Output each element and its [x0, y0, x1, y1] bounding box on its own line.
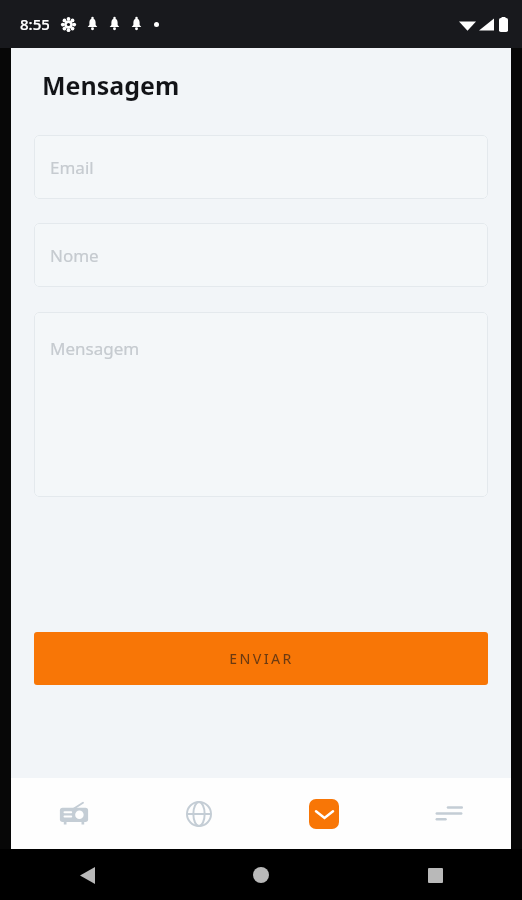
button[interactable]: Web	[136, 778, 261, 849]
button[interactable]: Mensagem	[34, 312, 488, 497]
button[interactable]: Nome	[34, 223, 488, 287]
button[interactable]: Sort messages	[386, 778, 511, 849]
staticText: ENVIAR	[229, 649, 294, 668]
button[interactable]: ENVIAR	[34, 632, 488, 685]
button[interactable]: Messages	[261, 778, 386, 849]
button[interactable]: Back	[70, 858, 104, 892]
staticText: 8:55	[20, 14, 50, 34]
staticText: Mensagem	[42, 68, 180, 102]
button[interactable]: Recent apps	[418, 858, 452, 892]
staticText: Email	[50, 156, 94, 179]
button[interactable]: Email	[34, 135, 488, 199]
button[interactable]: Radio	[11, 778, 136, 849]
button[interactable]: Home	[244, 858, 278, 892]
staticText: Mensagem	[50, 337, 140, 360]
staticText: Nome	[50, 244, 99, 267]
